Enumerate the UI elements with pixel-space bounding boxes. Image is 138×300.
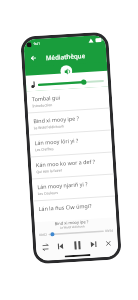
button[interactable]: Repeat	[40, 241, 51, 253]
button[interactable]: Bind xi mooy ipe ?	[28, 109, 111, 135]
button[interactable]: Speaker	[60, 65, 73, 77]
button[interactable]: Previous	[55, 240, 66, 252]
button[interactable]: Close	[103, 238, 114, 249]
staticText: Bind xi mooy ipe ?	[33, 114, 79, 124]
button[interactable]: Bind xi mooy ipe ?	[34, 218, 109, 231]
staticText: Le Wolof eldichuvh	[33, 123, 65, 130]
button[interactable]: Pause	[69, 237, 84, 252]
staticText: Introduction	[32, 102, 52, 108]
staticText: Les Chiffres	[35, 146, 54, 152]
staticText: Lán la ñus Ciw ümgi?	[38, 202, 92, 212]
staticText: Kán moo ko wor a def ?	[36, 157, 96, 168]
button[interactable]: Lán la ñus Ciw ümgi?	[33, 196, 116, 222]
staticText: Bind xi mooy ipe ?	[54, 219, 89, 226]
staticText: 9:41	[33, 42, 41, 46]
staticText: Le Wolof eldichuvh	[60, 224, 85, 230]
staticText: Lán mooy njariñ yi ?	[37, 180, 88, 190]
button[interactable]: Kán moo ko wor a def ?	[30, 152, 114, 178]
staticText: Tombal gui	[32, 93, 61, 102]
staticText: 03:54	[105, 229, 113, 233]
button[interactable]: Volume	[31, 74, 103, 91]
staticText: Les Couleurs	[38, 190, 59, 196]
button[interactable]: Seek	[39, 227, 113, 239]
button[interactable]: Next	[88, 238, 99, 250]
button[interactable]: Tombal gui	[26, 87, 110, 113]
staticText: Lán mooy lóri yi ?	[34, 136, 79, 146]
staticText: 00:02	[39, 233, 47, 237]
button[interactable]: Lán mooy lóri yi ?	[29, 130, 112, 156]
staticText: Qui étin la faire?	[36, 168, 62, 174]
button[interactable]: Back	[27, 52, 39, 63]
staticText: Médiathèque	[45, 51, 86, 61]
button[interactable]: Lán mooy njariñ yi ?	[32, 174, 115, 200]
